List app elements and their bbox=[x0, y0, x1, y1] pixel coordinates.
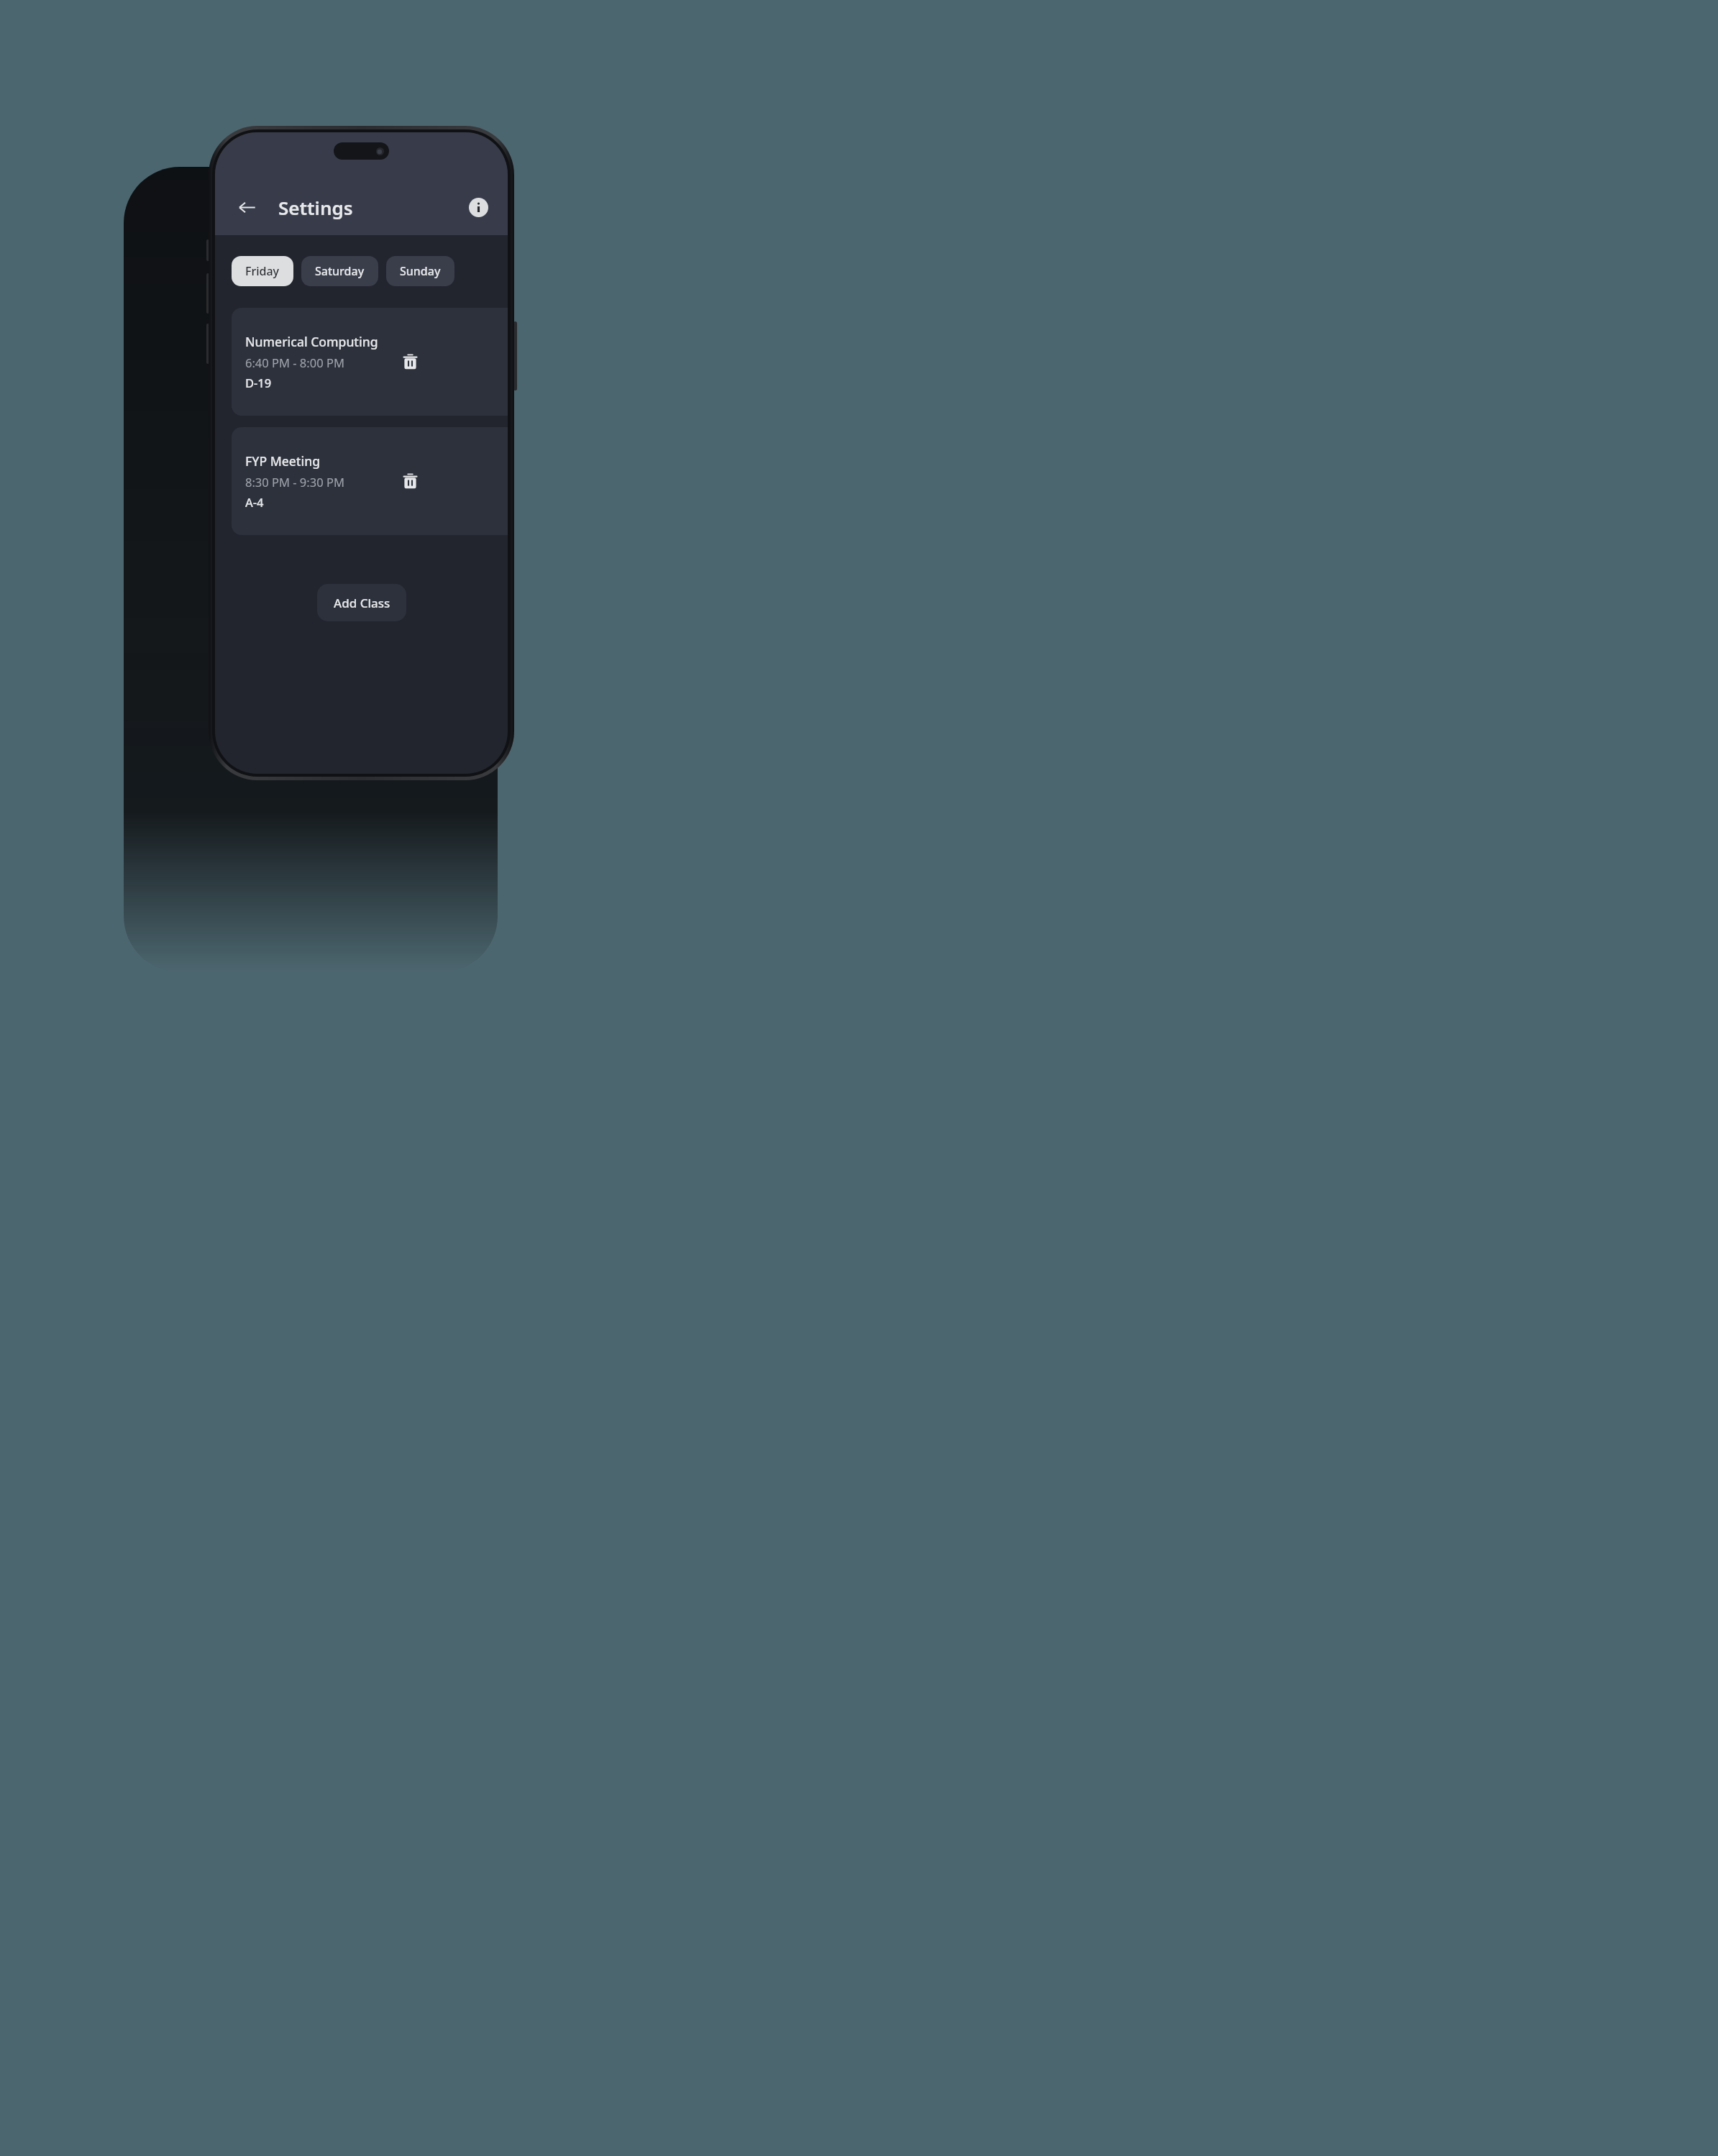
staticText: Add Class bbox=[334, 595, 390, 611]
button[interactable]: FYP Meeting bbox=[232, 427, 508, 535]
button[interactable]: Delete bbox=[394, 465, 426, 497]
staticText: Sunday bbox=[400, 263, 441, 279]
button[interactable]: Sunday bbox=[386, 256, 454, 286]
staticText: Saturday bbox=[315, 263, 365, 279]
staticText: Friday bbox=[245, 263, 280, 279]
staticText: Numerical Computing bbox=[245, 333, 378, 350]
button[interactable]: Info bbox=[465, 193, 492, 221]
staticText: Settings bbox=[278, 195, 353, 220]
staticText: A-4 bbox=[245, 494, 264, 510]
button[interactable]: Back bbox=[231, 191, 262, 223]
button[interactable]: Add Class bbox=[317, 584, 406, 621]
button[interactable]: Numerical Computing bbox=[232, 308, 508, 416]
staticText: 8:30 PM - 9:30 PM bbox=[245, 474, 344, 490]
staticText: 6:40 PM - 8:00 PM bbox=[245, 355, 344, 370]
button[interactable]: Friday bbox=[232, 256, 293, 286]
button[interactable]: Saturday bbox=[301, 256, 378, 286]
button[interactable]: Delete bbox=[394, 346, 426, 378]
staticText: FYP Meeting bbox=[245, 452, 321, 470]
staticText: D-19 bbox=[245, 375, 272, 390]
